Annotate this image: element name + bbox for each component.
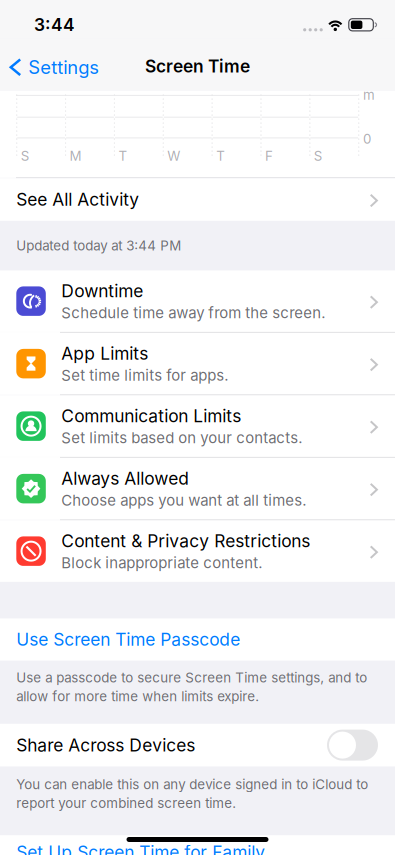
staticText: Screen Time bbox=[145, 56, 250, 77]
button[interactable]: Communication Limits bbox=[0, 395, 395, 457]
staticText: You can enable this on any device signed… bbox=[16, 776, 368, 792]
staticText: report your combined screen time. bbox=[16, 795, 236, 811]
button[interactable]: Content & Privacy Restrictions bbox=[0, 520, 395, 582]
staticText: 3:44 bbox=[34, 14, 75, 35]
staticText: Updated today at 3:44 PM bbox=[16, 237, 181, 254]
staticText: M bbox=[70, 148, 82, 164]
staticText: F bbox=[265, 148, 273, 164]
button[interactable]: Downtime bbox=[0, 270, 395, 332]
staticText: Set Up Screen Time for Family bbox=[16, 842, 265, 855]
staticText: Set time limits for apps. bbox=[61, 366, 228, 384]
staticText: See All Activity bbox=[16, 189, 139, 210]
staticText: m bbox=[363, 87, 375, 103]
staticText: Schedule time away from the screen. bbox=[61, 304, 325, 322]
button[interactable]: Settings bbox=[0, 48, 99, 82]
staticText: W bbox=[167, 148, 180, 164]
staticText: Downtime bbox=[61, 280, 143, 301]
button[interactable]: Share Across Devices bbox=[0, 724, 395, 766]
staticText: T bbox=[118, 148, 127, 164]
button[interactable]: See All Activity bbox=[0, 178, 395, 221]
button[interactable]: App Limits bbox=[0, 333, 395, 394]
button[interactable]: Set Up Screen Time for Family bbox=[0, 835, 395, 855]
staticText: Choose apps you want at all times. bbox=[61, 491, 306, 509]
staticText: Set limits based on your contacts. bbox=[61, 429, 302, 447]
staticText: Settings bbox=[28, 56, 99, 78]
staticText: allow for more time when limits expire. bbox=[16, 688, 259, 704]
button[interactable]: Use Screen Time Passcode bbox=[0, 618, 395, 661]
staticText: Block inappropriate content. bbox=[61, 554, 262, 572]
staticText: Use Screen Time Passcode bbox=[16, 629, 240, 650]
staticText: S bbox=[21, 148, 30, 164]
staticText: Content & Privacy Restrictions bbox=[61, 530, 310, 551]
staticText: Always Allowed bbox=[61, 468, 189, 489]
staticText: T bbox=[216, 148, 225, 164]
staticText: Use a passcode to secure Screen Time set… bbox=[16, 670, 367, 686]
staticText: S bbox=[314, 148, 323, 164]
staticText: App Limits bbox=[61, 343, 148, 364]
staticText: 0 bbox=[363, 131, 371, 147]
staticText: Share Across Devices bbox=[16, 735, 195, 756]
button[interactable]: Always Allowed bbox=[0, 458, 395, 519]
staticText: Communication Limits bbox=[61, 405, 241, 426]
